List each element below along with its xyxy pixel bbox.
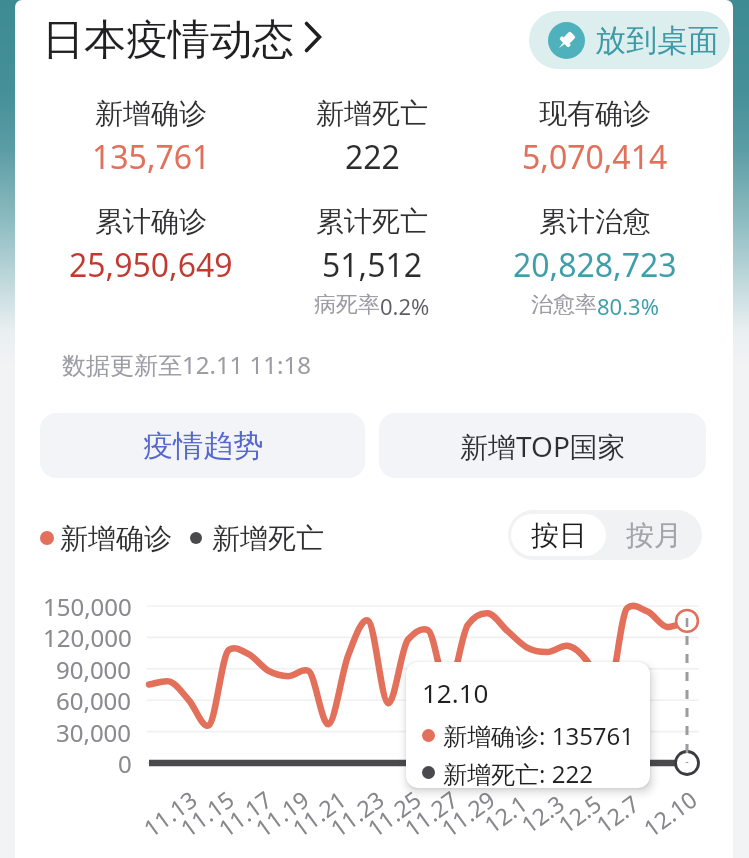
staticText: 放到桌面 xyxy=(595,21,719,60)
staticText: 12.1 xyxy=(478,787,533,839)
staticText: 5,070,414 xyxy=(522,135,668,179)
staticText: 12.10 xyxy=(422,675,489,710)
button[interactable]: 疫情趋势 xyxy=(40,413,365,478)
staticText: 135,761 xyxy=(92,135,211,179)
staticText: 0.2% xyxy=(380,291,430,321)
staticText: 11.17 xyxy=(212,783,278,843)
staticText: 累计治愈 xyxy=(539,204,651,239)
staticText: 11.13 xyxy=(137,783,203,843)
staticText: 累计确诊 xyxy=(95,204,207,239)
staticText: 按日 xyxy=(531,518,587,553)
staticText: 新增确诊: 135761 xyxy=(443,719,635,752)
staticText: 11.27 xyxy=(398,783,464,843)
staticText: 0 xyxy=(118,747,132,780)
staticText: 新增死亡 xyxy=(316,96,428,131)
staticText: 222 xyxy=(345,135,400,179)
staticText: 日本疫情动态 xyxy=(42,14,294,67)
staticText: 30,000 xyxy=(56,716,132,749)
button[interactable]: 按日 xyxy=(511,514,606,556)
staticText: 11.25 xyxy=(361,783,427,843)
staticText: 25,950,649 xyxy=(69,243,233,287)
staticText: 病死率 xyxy=(314,291,380,319)
staticText: 新增死亡: 222 xyxy=(443,757,593,788)
staticText: 51,512 xyxy=(322,243,423,287)
staticText: 新增TOP国家 xyxy=(460,427,626,465)
staticText: 90,000 xyxy=(56,653,132,686)
staticText: 12.3 xyxy=(515,787,570,839)
button[interactable]: 按月 xyxy=(606,510,702,560)
staticText: 120,000 xyxy=(43,621,132,654)
staticText: 20,828,723 xyxy=(513,243,677,287)
button[interactable]: 新增TOP国家 xyxy=(379,413,706,478)
staticText: 累计死亡 xyxy=(316,204,428,239)
staticText: 12.10 xyxy=(637,783,703,843)
staticText: 11.23 xyxy=(324,783,390,843)
button[interactable]: 放到桌面 xyxy=(529,11,730,69)
staticText: 治愈率 xyxy=(531,291,597,319)
staticText: 12.7 xyxy=(590,787,645,839)
staticText: 11.21 xyxy=(286,783,352,843)
staticText: 12.5 xyxy=(552,787,607,839)
staticText: 新增确诊 xyxy=(95,96,207,131)
staticText: 现有确诊 xyxy=(539,96,651,131)
staticText: 80.3% xyxy=(597,291,659,321)
staticText: 11.15 xyxy=(174,783,240,843)
staticText: 新增死亡 xyxy=(212,521,324,556)
staticText: 11.19 xyxy=(249,783,315,843)
staticText: 150,000 xyxy=(43,590,132,623)
staticText: 数据更新至12.11 11:18 xyxy=(62,348,311,381)
staticText: 60,000 xyxy=(56,684,132,717)
staticText: 疫情趋势 xyxy=(143,427,263,465)
staticText: 新增确诊 xyxy=(60,521,172,556)
staticText: 按月 xyxy=(626,518,682,553)
staticText: 11.29 xyxy=(435,783,501,843)
